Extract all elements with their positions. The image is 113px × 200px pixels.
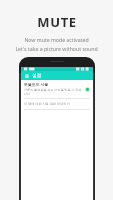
staticText: Let's take a picture without sound	[15, 45, 98, 52]
staticText: 이 앱에 대한 사용 권한 안내하기	[24, 102, 70, 106]
button[interactable]: Menu	[24, 73, 29, 78]
staticText: 무음모드 사용	[24, 82, 49, 87]
button[interactable]: 이 앱에 대한 사용 권한 안내하기	[21, 99, 93, 109]
staticText: Now mute mode activated	[24, 36, 89, 43]
button[interactable]: 무음모드 사용	[21, 80, 93, 98]
staticText: 설정	[32, 73, 42, 79]
staticText: MUTE	[37, 13, 77, 31]
staticText: 카메라 촬영음을 끄고 사진을 찍을 수 있습니다	[24, 88, 83, 96]
button[interactable]: Mute toggle	[85, 87, 90, 92]
